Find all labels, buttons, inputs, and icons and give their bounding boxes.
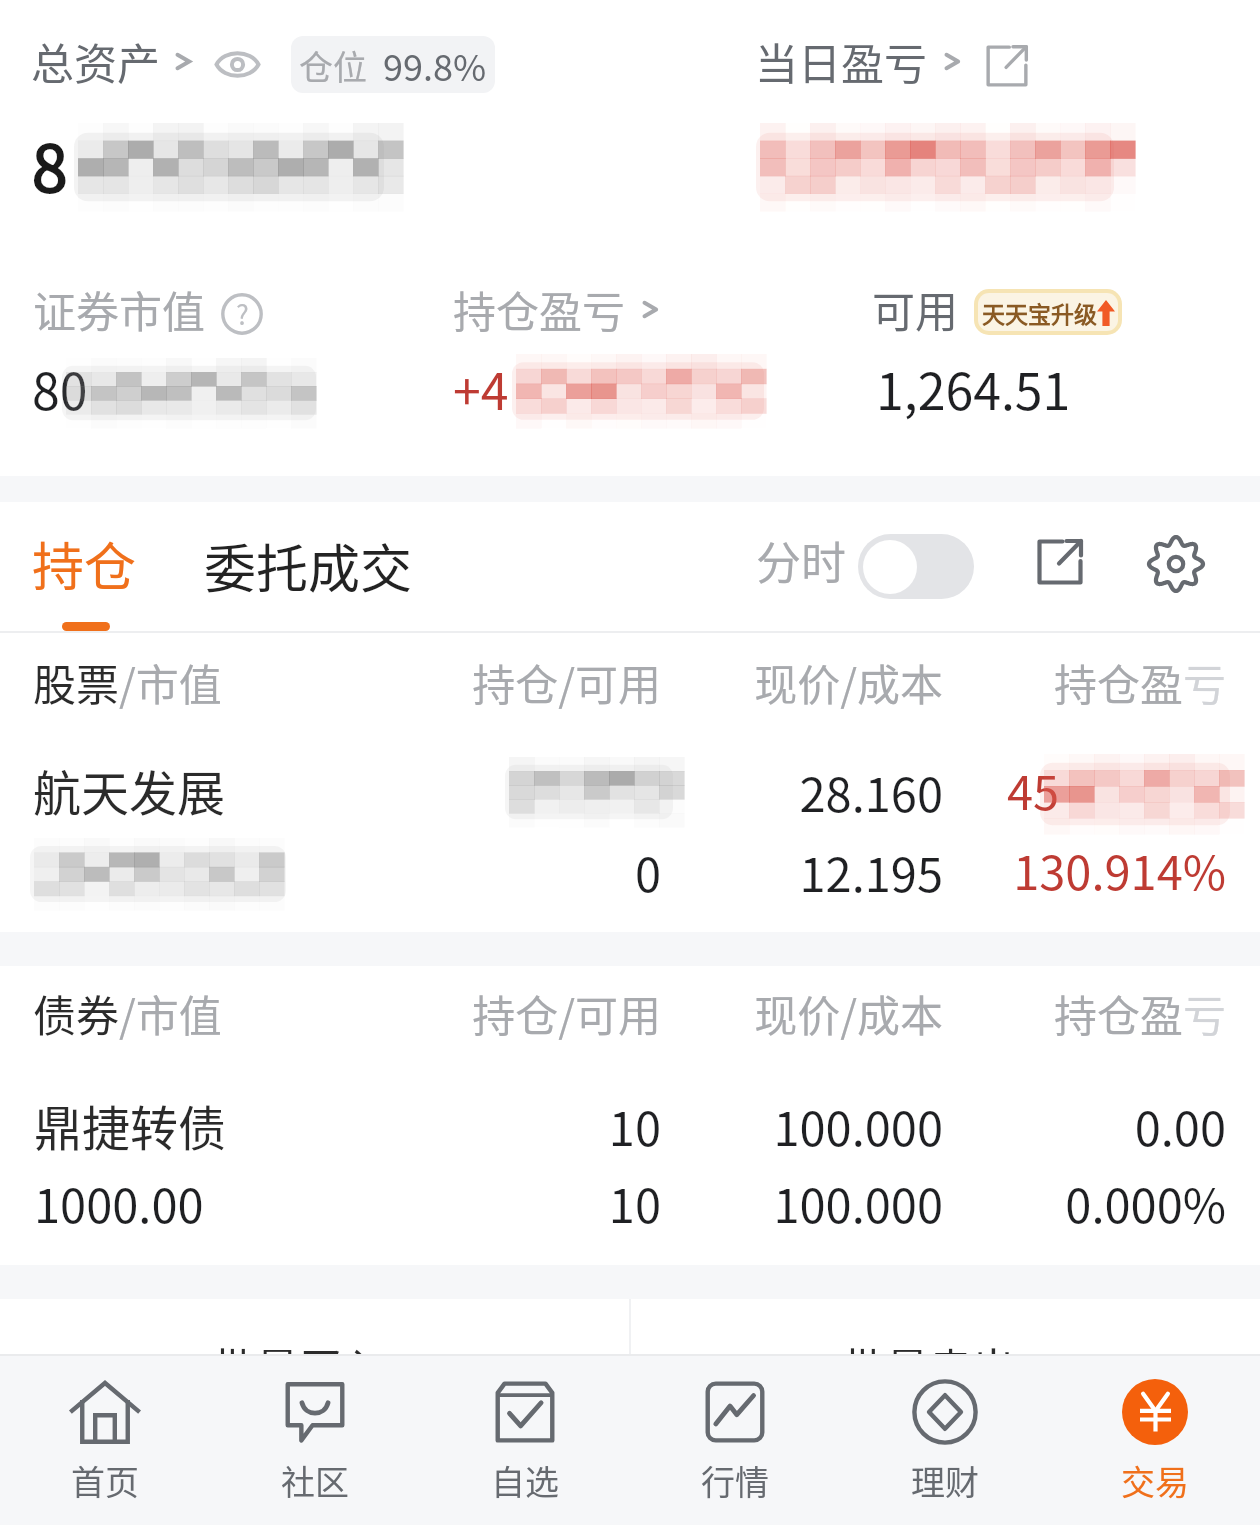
button[interactable]: 鼎捷转债 — [34, 1090, 227, 1160]
button[interactable]: 天天宝升级 — [978, 293, 1118, 331]
staticText: 10 — [241, 1168, 661, 1236]
staticText: 证券市值 — [33, 278, 205, 340]
staticText: 仓位 — [299, 41, 367, 90]
staticText: 130.914% — [806, 835, 1226, 903]
staticText: 持仓盈 — [1054, 651, 1183, 713]
button[interactable]: 行情 — [630, 1354, 840, 1525]
staticText: 28.160 — [523, 757, 943, 825]
staticText: 自选 — [491, 1456, 559, 1505]
staticText: 理财 — [911, 1456, 979, 1505]
staticText: 持仓/可用 — [341, 982, 661, 1044]
staticText: 80 — [32, 352, 88, 424]
button[interactable]: 批量卖出 — [843, 1335, 1015, 1354]
button[interactable]: 持仓盈亏 — [453, 278, 661, 340]
staticText: 0.000% — [806, 1168, 1226, 1236]
button[interactable]: 分时 — [756, 528, 847, 593]
staticText: 99.8% — [383, 39, 487, 91]
staticText: 100.000 — [523, 1091, 943, 1159]
button[interactable]: Settings — [1146, 534, 1206, 594]
staticText: 债券 — [33, 982, 119, 1044]
staticText: 亏 — [1183, 651, 1226, 713]
staticText: 鼎捷转债 — [34, 1090, 227, 1160]
staticText: 航天发展 — [33, 755, 226, 825]
staticText: 持仓/可用 — [341, 651, 661, 713]
button[interactable]: Toggle visibility — [214, 48, 261, 81]
staticText: 社区 — [281, 1456, 349, 1505]
staticText: 12.195 — [523, 837, 943, 905]
button[interactable]: 证券市值 — [33, 278, 205, 340]
staticText: 1000.00 — [34, 1168, 204, 1236]
staticText: 天天宝升级 — [982, 296, 1097, 329]
button[interactable]: 仓位 — [291, 36, 495, 93]
staticText: 现价/成本 — [623, 651, 943, 713]
staticText: 1,264.51 — [876, 352, 1071, 424]
staticText: 10 — [241, 1091, 661, 1159]
staticText: 持仓盈亏 — [453, 278, 625, 340]
staticText: 批量买入 — [213, 1335, 385, 1354]
staticText: 可用 — [872, 278, 958, 340]
button[interactable]: 当日盈亏 — [755, 30, 963, 92]
button[interactable]: 社区 — [210, 1354, 420, 1525]
staticText: 0 — [241, 837, 661, 905]
staticText: 首页 — [71, 1456, 139, 1505]
staticText: /市值 — [119, 651, 222, 713]
staticText: 持仓 — [32, 526, 137, 601]
button[interactable]: 理财 — [840, 1354, 1050, 1525]
staticText: 亏 — [1183, 982, 1226, 1044]
staticText: +4 — [453, 352, 509, 424]
staticText: 交易 — [1121, 1456, 1189, 1505]
button[interactable]: 总资产 — [31, 30, 194, 92]
button[interactable]: Time sharing toggle — [858, 534, 974, 599]
staticText: 总资产 — [31, 30, 160, 92]
staticText: 股票 — [33, 651, 119, 713]
button[interactable]: 委托成交 — [204, 528, 413, 603]
staticText: 0.00 — [806, 1091, 1226, 1159]
staticText: 45 — [1007, 755, 1060, 823]
button[interactable]: Share — [1035, 537, 1085, 587]
staticText: 批量卖出 — [843, 1335, 1015, 1354]
staticText: 持仓盈 — [1054, 982, 1183, 1044]
staticText: 100.000 — [523, 1168, 943, 1236]
button[interactable]: 批量买入 — [213, 1335, 385, 1354]
button[interactable]: Open detail — [984, 43, 1030, 89]
staticText: 现价/成本 — [623, 982, 943, 1044]
staticText: 8 — [32, 118, 68, 211]
button[interactable]: 航天发展 — [33, 755, 226, 825]
staticText: 行情 — [701, 1456, 769, 1505]
button[interactable]: 自选 — [420, 1354, 630, 1525]
staticText: 委托成交 — [204, 528, 413, 603]
button[interactable]: Help — [221, 293, 263, 335]
staticText: 当日盈亏 — [755, 30, 927, 92]
staticText: 分时 — [756, 528, 847, 593]
staticText: /市值 — [119, 982, 222, 1044]
staticText: ? — [236, 294, 249, 333]
button[interactable]: 交易 — [1050, 1354, 1260, 1525]
button[interactable]: 持仓 — [32, 526, 137, 601]
button[interactable]: 首页 — [0, 1354, 210, 1525]
